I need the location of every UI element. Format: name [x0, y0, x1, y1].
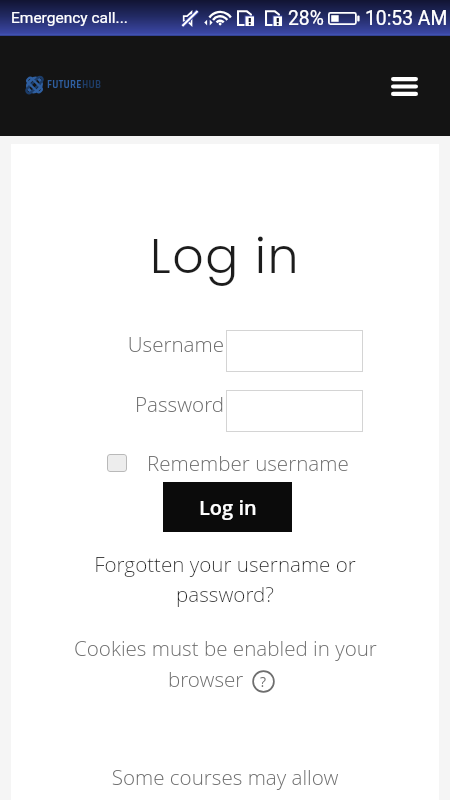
staticText: Username [11, 330, 224, 358]
staticText: Emergency call... [11, 9, 128, 27]
staticText: 28% [288, 7, 324, 30]
button[interactable]: Help with cookies [252, 670, 275, 693]
staticText: FUTURE [47, 78, 82, 92]
button[interactable]: Forgotten your username or password? [83, 550, 367, 608]
staticText: HUB [82, 78, 102, 92]
staticText: ? [260, 672, 267, 691]
button[interactable]: Log in [163, 482, 292, 532]
button[interactable]: Remember username [107, 449, 349, 477]
button[interactable]: Password [226, 390, 363, 432]
staticText: browser [168, 665, 244, 693]
staticText: 10:53 AM [365, 7, 448, 30]
staticText: Log in [11, 222, 439, 291]
staticText: Some courses may allow [11, 763, 439, 791]
staticText: Password [11, 390, 224, 418]
button[interactable]: FUTURE [26, 75, 102, 95]
staticText: Log in [199, 494, 257, 521]
button[interactable]: Open navigation menu [384, 66, 424, 106]
button[interactable]: Username [226, 330, 363, 372]
staticText: Cookies must be enabled in your [74, 634, 377, 662]
staticText: Remember username [147, 449, 349, 477]
